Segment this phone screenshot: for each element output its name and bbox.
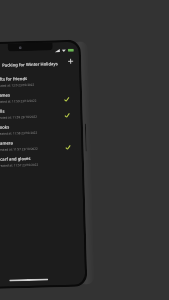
staticText: Books: [0, 124, 10, 131]
button[interactable]: Camera: [0, 135, 82, 154]
staticText: Games: [0, 92, 10, 99]
button[interactable]: Books: [0, 119, 81, 138]
staticText: created at: 12:0 23/10/2022: [0, 83, 35, 88]
staticText: Pills: [0, 109, 5, 115]
staticText: created at: 11:59 23/10/2022: [0, 99, 37, 104]
staticText: Scarf and gloves: [0, 156, 31, 163]
staticText: Camera: [0, 140, 13, 147]
staticText: created at: 11:58 23/10/2022: [0, 131, 38, 136]
staticText: created at: 11:59 23/10/2022: [0, 115, 38, 120]
staticText: created at: 11:57 23/10/2022: [0, 147, 39, 152]
button[interactable]: Scarf and gloves: [0, 151, 82, 170]
staticText: Packing for Winter Holidays: [2, 61, 58, 69]
button[interactable]: Add list: [65, 56, 76, 67]
button[interactable]: Games: [0, 87, 80, 106]
button[interactable]: Gifts for friends: [0, 72, 80, 91]
staticText: Gifts for friends: [0, 76, 28, 83]
button[interactable]: Pills: [0, 103, 81, 122]
staticText: created at: 11:57 23/10/2022: [0, 163, 39, 168]
